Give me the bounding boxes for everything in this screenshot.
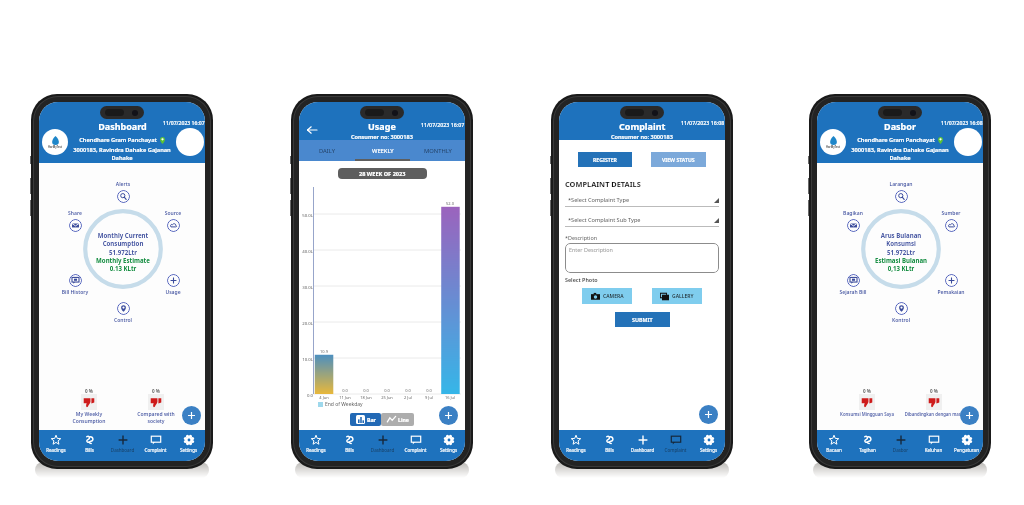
button[interactable]: Alerts: [101, 181, 145, 203]
button[interactable]: REGISTER: [578, 152, 632, 167]
button[interactable]: Complaint: [659, 430, 692, 461]
button[interactable]: Pengaturan: [950, 430, 983, 461]
button[interactable]: Control: [101, 302, 145, 324]
button[interactable]: Tagihan: [851, 430, 884, 461]
button[interactable]: Settings: [432, 430, 465, 461]
button[interactable]: Bacaan: [817, 430, 851, 461]
button[interactable]: Bagikan: [831, 210, 875, 232]
button[interactable]: Bills: [73, 430, 106, 461]
button[interactable]: Settings: [172, 430, 205, 461]
button[interactable]: Profile: [176, 128, 204, 156]
button[interactable]: CAMERA: [582, 288, 632, 304]
staticText: Source: [151, 210, 195, 217]
button[interactable]: Larangan: [879, 181, 923, 203]
staticText: Alerts: [101, 181, 145, 188]
button[interactable]: Settings: [692, 430, 725, 461]
button[interactable]: Add: [439, 406, 458, 425]
staticText: 0 %: [85, 388, 93, 394]
button[interactable]: MONTHLY: [410, 140, 465, 161]
button[interactable]: Usage: [151, 274, 195, 296]
button[interactable]: Kontrol: [879, 302, 923, 324]
button[interactable]: DAILY: [299, 140, 355, 161]
button[interactable]: Complaint: [139, 430, 172, 461]
button[interactable]: VIEW STATUS: [651, 152, 706, 167]
staticText: 18 Jun: [356, 395, 376, 400]
button[interactable]: Keluhan: [917, 430, 950, 461]
staticText: Readings: [559, 447, 593, 453]
staticText: Dasbor: [884, 120, 916, 132]
staticText: Consumer no: 3000183: [351, 133, 413, 140]
button[interactable]: *Select Complaint Type: [565, 196, 719, 207]
staticText: Sejarah Bill: [831, 289, 875, 296]
button[interactable]: Enter Description: [565, 243, 719, 273]
button[interactable]: SUBMIT: [615, 312, 670, 327]
staticText: 3000183, Ravindra Dahake Gajanan Dahake: [71, 146, 173, 162]
staticText: 52.0: [440, 201, 460, 206]
staticText: Pengaturan: [950, 447, 983, 453]
staticText: Readings: [39, 447, 73, 453]
button[interactable]: Readings: [299, 430, 333, 461]
button[interactable]: Dashboard: [106, 430, 139, 461]
staticText: 0.13 KLtr: [86, 264, 160, 272]
button[interactable]: Bills: [593, 430, 626, 461]
button[interactable]: Add: [699, 405, 718, 424]
button[interactable]: App logo: [42, 129, 68, 155]
button[interactable]: Line: [381, 413, 414, 426]
button[interactable]: Profile: [954, 128, 982, 156]
button[interactable]: Source: [151, 210, 195, 232]
button[interactable]: WEEKLY: [355, 140, 410, 161]
button[interactable]: 0 %: [57, 388, 121, 424]
button[interactable]: Complaint: [399, 430, 432, 461]
staticText: 16 Jul: [440, 395, 460, 400]
staticText: HarMyTest: [48, 145, 62, 149]
staticText: Settings: [432, 447, 465, 453]
staticText: Bills: [333, 447, 366, 453]
button[interactable]: Sejarah Bill: [831, 274, 875, 296]
button[interactable]: App logo: [820, 129, 846, 155]
button[interactable]: Bar: [350, 413, 381, 426]
staticText: 10.0L: [299, 356, 313, 362]
button[interactable]: *Select Complaint Sub Type: [565, 216, 719, 227]
staticText: Control: [101, 317, 145, 324]
staticText: 11/07/2023 16:07: [163, 120, 205, 127]
staticText: 50.0L: [299, 212, 313, 218]
staticText: 40.0L: [299, 248, 313, 254]
button[interactable]: Bill History: [53, 274, 97, 296]
button[interactable]: Sumber: [929, 210, 973, 232]
button[interactable]: Bills: [333, 430, 366, 461]
staticText: 0.0: [335, 388, 355, 393]
button[interactable]: Share: [53, 210, 97, 232]
staticText: Complaint: [619, 120, 666, 132]
button[interactable]: Dasbor: [884, 430, 917, 461]
staticText: VIEW STATUS: [662, 156, 695, 163]
staticText: 11/07/2023 16:07: [421, 121, 465, 128]
staticText: 0.0: [299, 392, 313, 398]
staticText: 30.0L: [299, 284, 313, 290]
staticText: Bacaan: [817, 447, 851, 453]
button[interactable]: GALLERY: [652, 288, 702, 304]
staticText: CAMERA: [603, 293, 624, 300]
button[interactable]: 28 WEEK OF 2023: [338, 168, 427, 179]
staticText: Pemakaian: [929, 289, 973, 296]
staticText: Bagikan: [831, 210, 875, 217]
button[interactable]: Back: [305, 123, 318, 136]
button[interactable]: Readings: [559, 430, 593, 461]
staticText: 0 %: [152, 388, 160, 394]
button[interactable]: Add: [960, 406, 979, 425]
staticText: SUBMIT: [632, 316, 653, 323]
button[interactable]: 0 %: [835, 388, 899, 417]
button[interactable]: Add: [182, 406, 201, 425]
staticText: End of Weekday: [325, 401, 363, 408]
staticText: Sumber: [929, 210, 973, 217]
staticText: Konsumsi Mingguan Saya: [835, 411, 899, 417]
button[interactable]: 0 %: [124, 388, 188, 424]
button[interactable]: Dashboard: [366, 430, 399, 461]
staticText: Dasbor: [884, 447, 917, 453]
button[interactable]: 0 %: [902, 388, 966, 417]
button[interactable]: Pemakaian: [929, 274, 973, 296]
button[interactable]: Dashboard: [626, 430, 659, 461]
staticText: 20.0L: [299, 320, 313, 326]
staticText: Line: [398, 416, 409, 423]
button[interactable]: Readings: [39, 430, 73, 461]
staticText: Dashboard: [98, 120, 147, 132]
